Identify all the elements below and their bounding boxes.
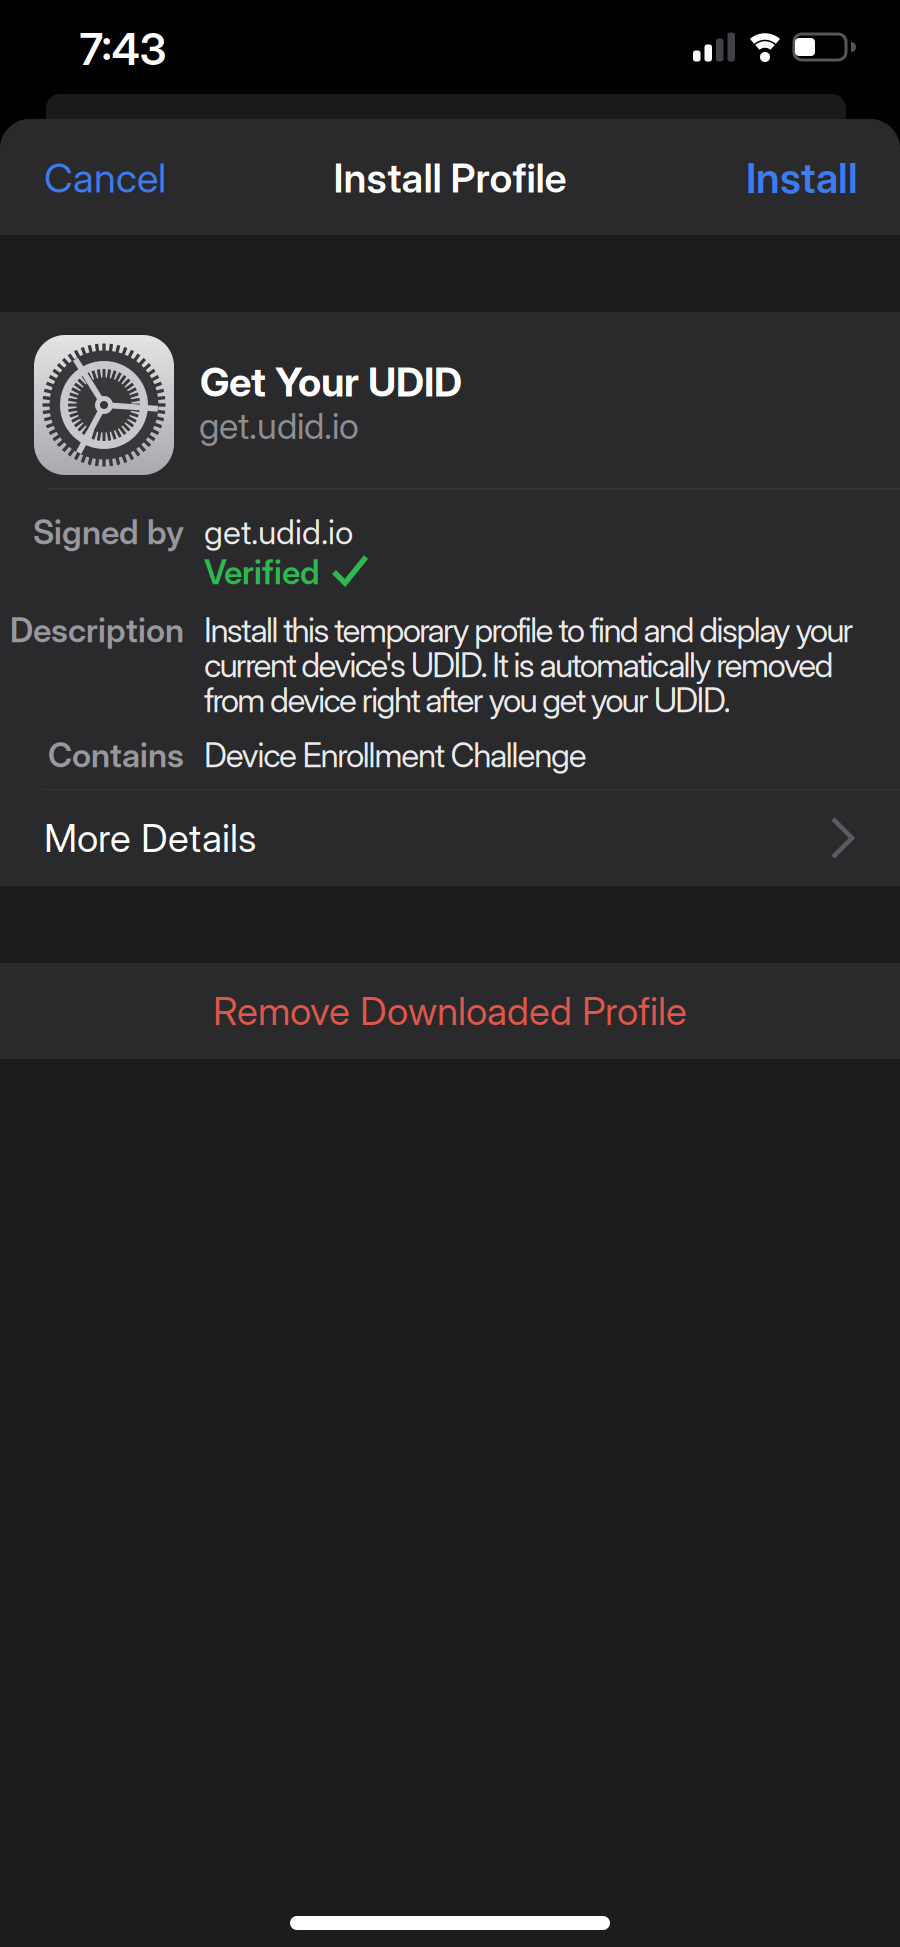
staticText: current device's UDID. It is automatical… [204, 645, 834, 685]
staticText: get.udid.io [204, 512, 353, 552]
staticText: Remove Downloaded Profile [213, 988, 687, 1034]
staticText: from device right after you get your UDI… [204, 680, 730, 720]
staticText: 7:43 [79, 22, 166, 76]
staticText: Device Enrollment Challenge [204, 735, 587, 775]
button[interactable]: Install [658, 120, 858, 236]
staticText: Install Profile [333, 154, 566, 202]
staticText: get.udid.io [199, 404, 359, 448]
staticText: Verified [204, 552, 320, 592]
staticText: Contains [48, 735, 184, 775]
staticText: Signed by [33, 512, 184, 552]
staticText: Description [10, 610, 184, 650]
staticText: Install [746, 153, 858, 203]
button[interactable]: Cancel [44, 120, 244, 236]
staticText: Install this temporary profile to find a… [204, 610, 854, 650]
button[interactable]: More Details [0, 790, 900, 886]
staticText: Get Your UDID [200, 358, 462, 406]
staticText: More Details [44, 815, 256, 861]
staticText: Cancel [44, 154, 166, 202]
button[interactable]: Remove Downloaded Profile [0, 963, 900, 1059]
